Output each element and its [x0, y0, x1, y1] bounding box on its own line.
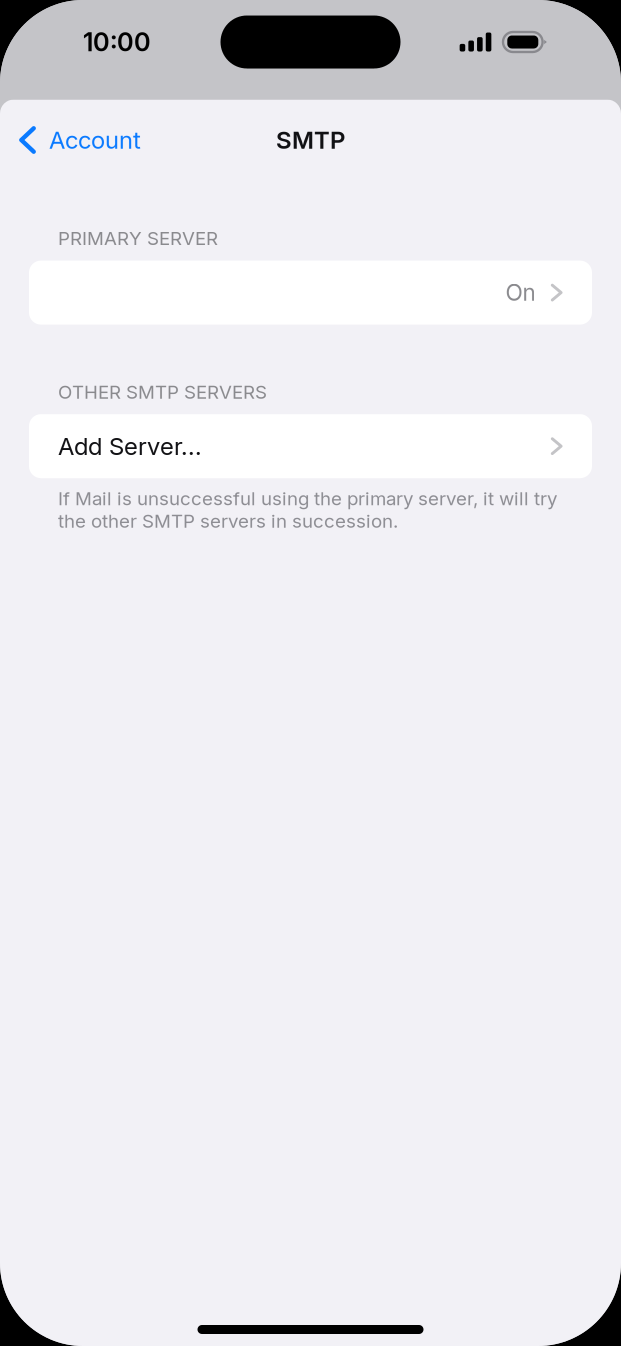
staticText: 10:00 — [83, 27, 151, 57]
button[interactable]: On — [0, 261, 621, 325]
staticText: SMTP — [276, 125, 345, 154]
staticText: OTHER SMTP SERVERS — [58, 381, 267, 403]
staticText: On — [505, 279, 535, 306]
button[interactable]: Add Server... — [0, 414, 621, 478]
button[interactable]: Account — [0, 113, 157, 166]
staticText: Add Server... — [58, 432, 202, 461]
staticText: Account — [49, 125, 141, 154]
staticText: If Mail is unsuccessful using the primar… — [58, 487, 557, 532]
staticText: PRIMARY SERVER — [58, 227, 218, 250]
